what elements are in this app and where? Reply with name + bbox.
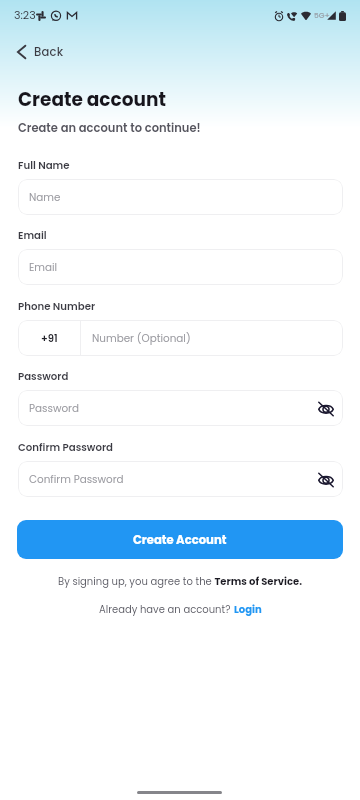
staticText: Create account (18, 87, 166, 113)
staticText: By signing up, you agree to the Terms of… (58, 574, 302, 588)
button[interactable]: Show password (314, 396, 338, 420)
staticText: Confirm Password (29, 472, 124, 487)
staticText: +91 (41, 331, 58, 345)
staticText: 5G+ (314, 10, 330, 20)
staticText: 3:23 (14, 7, 36, 22)
staticText: Already have an account? (99, 602, 234, 616)
button[interactable]: Email (18, 249, 343, 285)
staticText: Create an account to continue! (18, 120, 201, 136)
staticText: Password (18, 369, 69, 383)
button[interactable]: Show password (314, 467, 338, 491)
button[interactable]: Login (234, 602, 262, 616)
staticText: Back (34, 44, 64, 60)
staticText: Name (29, 190, 61, 205)
button[interactable]: +91 (18, 320, 343, 356)
staticText: Email (18, 228, 47, 242)
staticText: Full Name (18, 158, 70, 172)
button[interactable]: Name (18, 179, 343, 215)
staticText: Confirm Password (18, 440, 113, 454)
button[interactable]: Create Account (17, 520, 343, 559)
button[interactable]: Back (11, 38, 70, 66)
button[interactable]: Password (18, 390, 343, 426)
staticText: Password (29, 401, 79, 416)
staticText: Phone Number (18, 299, 96, 313)
staticText: Login (234, 602, 262, 616)
staticText: Email (29, 260, 58, 275)
button[interactable]: Confirm Password (18, 461, 343, 497)
staticText: Number (Optional) (92, 331, 191, 346)
staticText: Create Account (133, 532, 227, 548)
